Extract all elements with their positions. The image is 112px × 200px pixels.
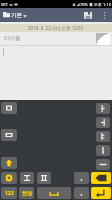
button[interactable]: Key bbox=[96, 117, 110, 128]
button[interactable]: 123 bbox=[1, 187, 17, 199]
button[interactable]: 한영 bbox=[19, 187, 34, 199]
button[interactable]: 기본 bbox=[3, 8, 30, 22]
staticText: 2016. 6. 22. (수) 오후 12:57 bbox=[28, 25, 84, 31]
button[interactable]: Key bbox=[37, 187, 71, 199]
staticText: 123 bbox=[5, 190, 14, 197]
button[interactable]: Key bbox=[1, 157, 17, 169]
button[interactable]: More options bbox=[99, 8, 110, 22]
button[interactable]: Key bbox=[1, 129, 17, 141]
staticText: SKT bbox=[1, 2, 8, 7]
staticText: 타이틀 bbox=[4, 35, 21, 42]
button[interactable]: Key bbox=[1, 102, 17, 114]
button[interactable]: Key bbox=[37, 172, 51, 184]
button[interactable]: Attachment bbox=[96, 33, 110, 45]
button[interactable]: Key bbox=[20, 172, 34, 184]
button[interactable]: Key bbox=[91, 187, 111, 199]
staticText: 75% bbox=[80, 2, 88, 7]
button[interactable]: Key bbox=[96, 145, 110, 156]
button[interactable]: Key bbox=[96, 103, 110, 114]
button[interactable]: Key bbox=[74, 172, 89, 184]
button[interactable]: Key bbox=[96, 131, 110, 142]
staticText: 기본 bbox=[11, 12, 22, 19]
button[interactable]: Key bbox=[91, 172, 111, 184]
button[interactable]: Key bbox=[1, 172, 17, 184]
staticText: 한영 bbox=[22, 190, 32, 196]
button[interactable]: Key bbox=[74, 187, 89, 199]
staticText: 오후 1:10 bbox=[94, 2, 111, 7]
button[interactable]: Save bbox=[82, 8, 94, 22]
button[interactable]: Key bbox=[96, 159, 110, 170]
